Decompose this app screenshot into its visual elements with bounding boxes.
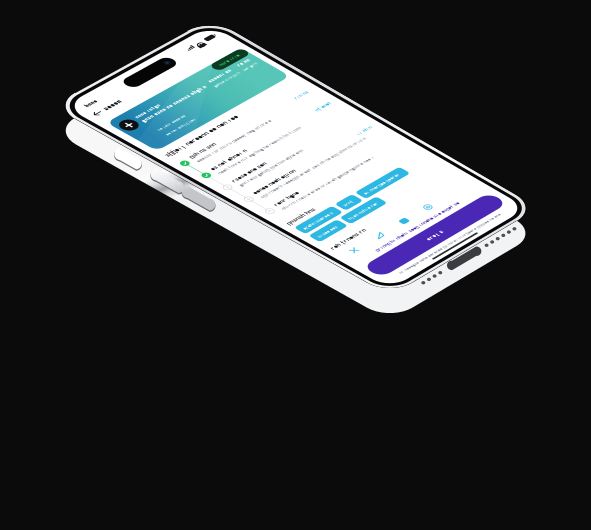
button[interactable]: Back [0,0,591,530]
button[interactable] [0,0,591,530]
